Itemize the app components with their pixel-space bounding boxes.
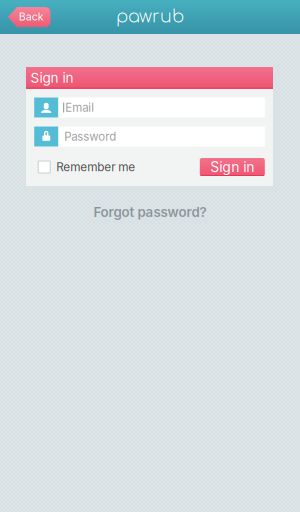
staticText: Forgot password? — [93, 204, 206, 220]
staticText: Sign in — [30, 69, 73, 86]
staticText: pawrub — [116, 7, 184, 27]
staticText: Back — [19, 10, 44, 23]
button[interactable]: Forgot password? — [93, 204, 206, 220]
staticText: Password — [64, 130, 116, 143]
button[interactable]: Back — [8, 7, 50, 27]
staticText: Sign in — [210, 158, 254, 175]
button[interactable]: Remember me — [34, 160, 135, 174]
staticText: Remember me — [56, 160, 135, 174]
staticText: Email — [65, 101, 94, 114]
button[interactable]: Sign in — [200, 158, 265, 176]
